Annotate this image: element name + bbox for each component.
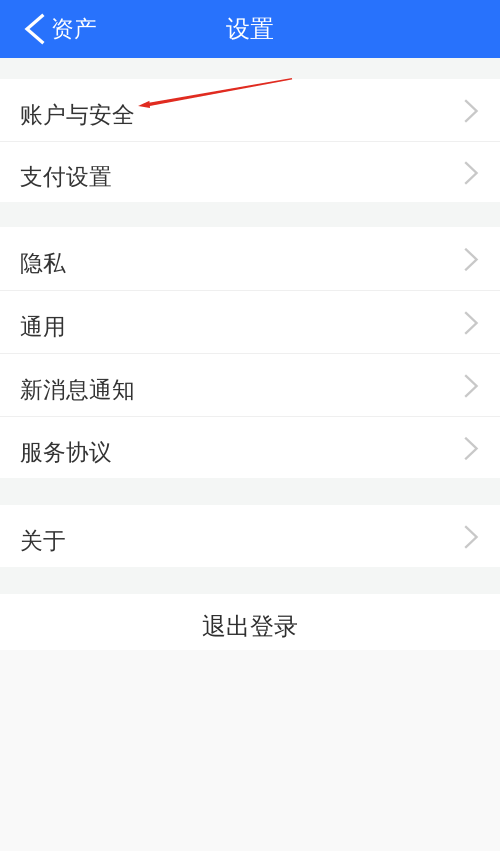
button[interactable]: 资产 — [0, 0, 111, 58]
staticText: 账户与安全 — [20, 101, 135, 129]
staticText: 设置 — [226, 14, 274, 44]
staticText: 退出登录 — [202, 612, 298, 641]
staticText: 隐私 — [20, 250, 66, 277]
staticText: 通用 — [20, 313, 66, 341]
button[interactable]: 通用 — [0, 291, 500, 353]
button[interactable]: 账户与安全 — [0, 79, 500, 141]
button[interactable]: 新消息通知 — [0, 354, 500, 416]
button[interactable]: 支付设置 — [0, 142, 500, 202]
staticText: 支付设置 — [20, 163, 112, 191]
button[interactable]: 服务协议 — [0, 417, 500, 478]
staticText: 关于 — [20, 527, 66, 555]
staticText: 新消息通知 — [20, 376, 135, 404]
button[interactable]: 关于 — [0, 505, 500, 567]
button[interactable]: 退出登录 — [0, 594, 500, 650]
button[interactable]: 隐私 — [0, 227, 500, 290]
staticText: 服务协议 — [20, 439, 112, 466]
staticText: 资产 — [51, 15, 97, 43]
